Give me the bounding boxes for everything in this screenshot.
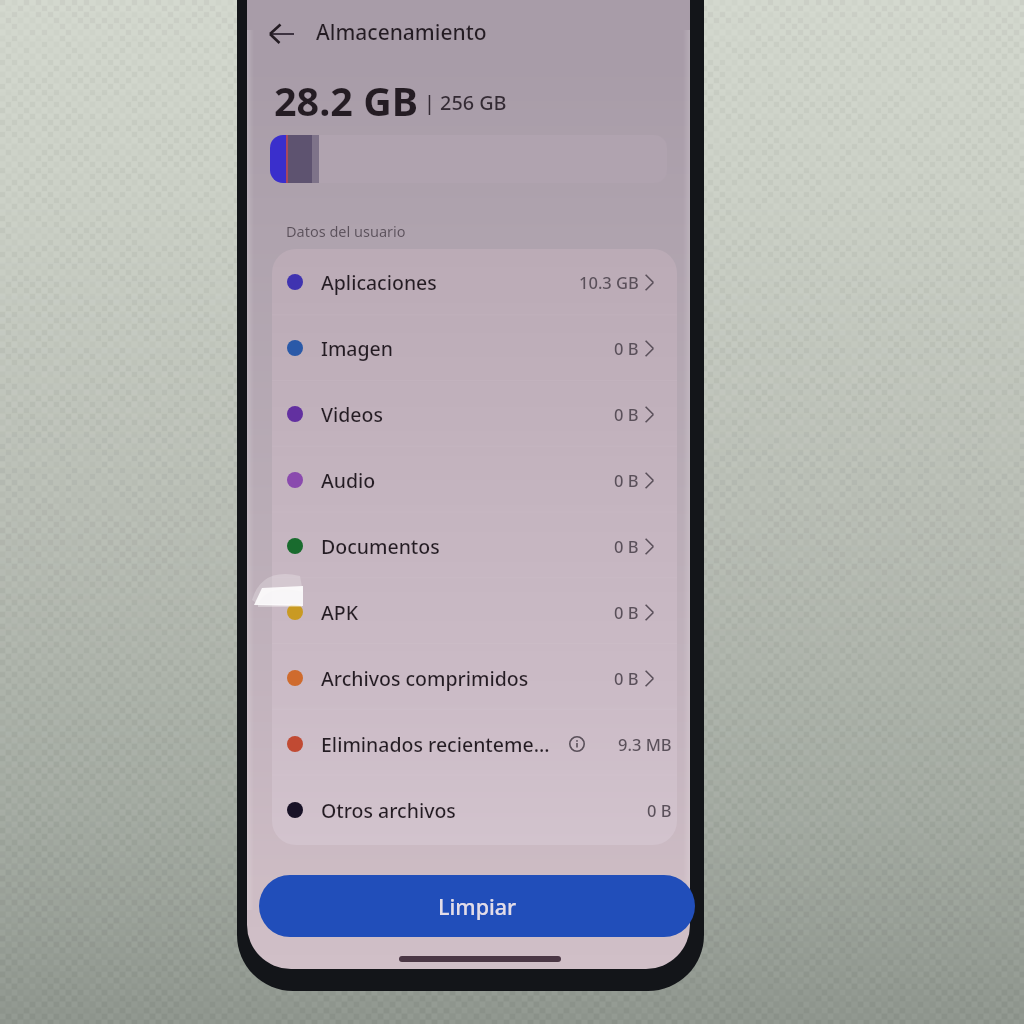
staticText: 0 B: [614, 601, 639, 623]
button[interactable]: Eliminados recienteme…: [272, 711, 677, 777]
staticText: Otros archivos: [321, 797, 456, 824]
button[interactable]: Archivos comprimidos: [272, 645, 677, 711]
staticText: APK: [321, 599, 358, 626]
staticText: 0 B: [614, 403, 639, 425]
staticText: 0 B: [614, 667, 639, 689]
staticText: 28.2 GB: [274, 74, 419, 128]
staticText: 9.3 MB: [618, 733, 672, 755]
button[interactable]: Imagen: [272, 315, 677, 381]
staticText: Aplicaciones: [321, 269, 437, 296]
button[interactable]: Documentos: [272, 513, 677, 579]
staticText: Archivos comprimidos: [321, 665, 529, 692]
staticText: Documentos: [321, 533, 440, 560]
staticText: 10.3 GB: [579, 271, 639, 293]
button[interactable]: Audio: [272, 447, 677, 513]
staticText: Imagen: [321, 335, 394, 362]
staticText: 0 B: [647, 799, 672, 821]
staticText: Almacenamiento: [316, 18, 487, 47]
staticText: 0 B: [614, 337, 639, 359]
staticText: Limpiar: [438, 892, 517, 921]
button[interactable]: Videos: [272, 381, 677, 447]
staticText: 0 B: [614, 535, 639, 557]
staticText: | 256 GB: [424, 89, 507, 116]
staticText: Audio: [321, 467, 376, 494]
button[interactable]: APK: [272, 579, 677, 645]
button[interactable]: Aplicaciones: [272, 249, 677, 315]
staticText: Eliminados recienteme…: [321, 731, 550, 758]
staticText: 0 B: [614, 469, 639, 491]
staticText: Datos del usuario: [286, 221, 406, 241]
button[interactable]: Otros archivos: [272, 777, 677, 843]
staticText: Videos: [321, 401, 383, 428]
button[interactable]: Limpiar: [259, 875, 695, 937]
button[interactable]: Back: [269, 21, 295, 47]
